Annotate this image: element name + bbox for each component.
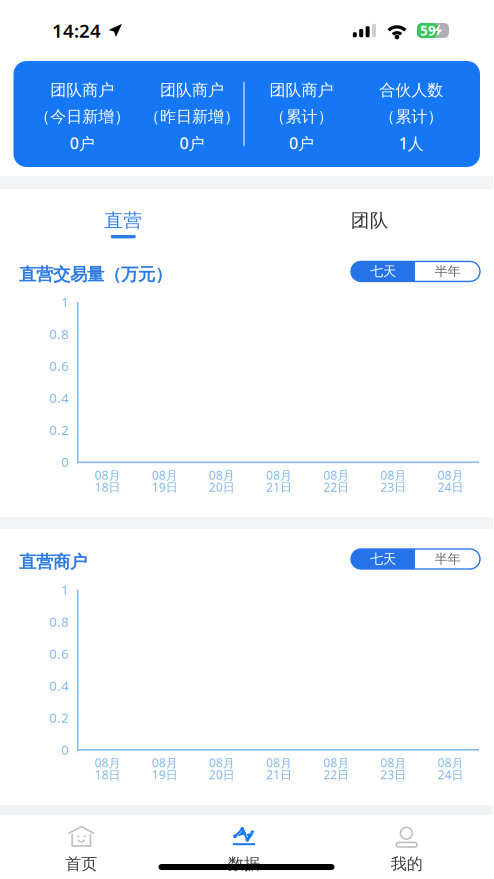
staticText: 18日 (95, 767, 121, 783)
button[interactable]: 七天 (351, 549, 415, 569)
staticText: 0 (61, 741, 69, 758)
staticText: 08月 (95, 755, 121, 771)
staticText: 0户 (289, 132, 314, 154)
button[interactable]: 半年 (415, 549, 480, 569)
staticText: 24日 (437, 479, 463, 495)
staticText: （今日新增） (34, 107, 130, 127)
staticText: （昨日新增） (144, 107, 240, 127)
staticText: 0 (61, 453, 69, 471)
staticText: 14:24 (52, 18, 101, 43)
staticText: 0.4 (49, 677, 69, 694)
staticText: 团队商户 (160, 80, 224, 100)
staticText: 1 (61, 293, 69, 311)
staticText: 0.8 (49, 613, 69, 630)
staticText: 08月 (266, 755, 292, 771)
staticText: 08月 (323, 755, 349, 771)
staticText: 21日 (266, 767, 292, 783)
staticText: 22日 (323, 767, 349, 783)
staticText: 1 (61, 581, 69, 598)
staticText: 团队商户 (270, 80, 334, 100)
staticText: 0.4 (49, 389, 69, 407)
staticText: 0户 (179, 132, 204, 154)
staticText: 59 (420, 22, 436, 39)
staticText: 08月 (437, 755, 463, 771)
staticText: 半年 (434, 551, 460, 567)
staticText: 19日 (152, 479, 178, 495)
staticText: 08月 (152, 467, 178, 483)
staticText: 23日 (380, 767, 406, 783)
staticText: 直营商户 (19, 551, 87, 573)
staticText: 七天 (370, 551, 396, 567)
staticText: 19日 (152, 767, 178, 783)
staticText: 直营交易量（万元） (19, 264, 172, 285)
staticText: 0.6 (49, 645, 69, 662)
staticText: 08月 (152, 755, 178, 771)
staticText: 合伙人数 (379, 80, 443, 100)
staticText: 08月 (323, 467, 349, 483)
staticText: 22日 (323, 479, 349, 495)
staticText: 08月 (380, 467, 406, 483)
staticText: （累计） (270, 107, 334, 127)
staticText: 直营 (104, 209, 142, 232)
staticText: 七天 (370, 263, 396, 280)
staticText: 0户 (70, 132, 95, 154)
button[interactable]: 直营 (0, 209, 246, 238)
staticText: 08月 (437, 467, 463, 483)
staticText: 团队商户 (50, 80, 114, 100)
button[interactable]: 我的 (325, 826, 488, 874)
staticText: 1人 (399, 132, 424, 154)
staticText: 21日 (266, 479, 292, 495)
button[interactable]: 团队 (246, 209, 493, 238)
staticText: 08月 (380, 755, 406, 771)
button[interactable]: 半年 (415, 261, 480, 281)
button[interactable]: 七天 (351, 261, 415, 281)
staticText: 我的 (391, 854, 423, 874)
button[interactable]: 数据 (163, 826, 325, 874)
staticText: 0.2 (49, 421, 69, 439)
staticText: 08月 (209, 467, 235, 483)
staticText: 团队 (351, 209, 389, 232)
staticText: 0.6 (49, 357, 69, 375)
staticText: 数据 (228, 854, 260, 874)
staticText: 08月 (266, 467, 292, 483)
staticText: 20日 (209, 479, 235, 495)
staticText: （累计） (379, 107, 443, 127)
staticText: 半年 (434, 263, 460, 280)
staticText: 20日 (209, 767, 235, 783)
staticText: 首页 (65, 854, 97, 874)
staticText: 08月 (209, 755, 235, 771)
staticText: 24日 (437, 767, 463, 783)
staticText: 0.2 (49, 709, 69, 726)
staticText: 08月 (95, 467, 121, 483)
button[interactable]: 首页 (0, 826, 163, 874)
staticText: 0.8 (49, 325, 69, 343)
staticText: 18日 (95, 479, 121, 495)
staticText: 23日 (380, 479, 406, 495)
